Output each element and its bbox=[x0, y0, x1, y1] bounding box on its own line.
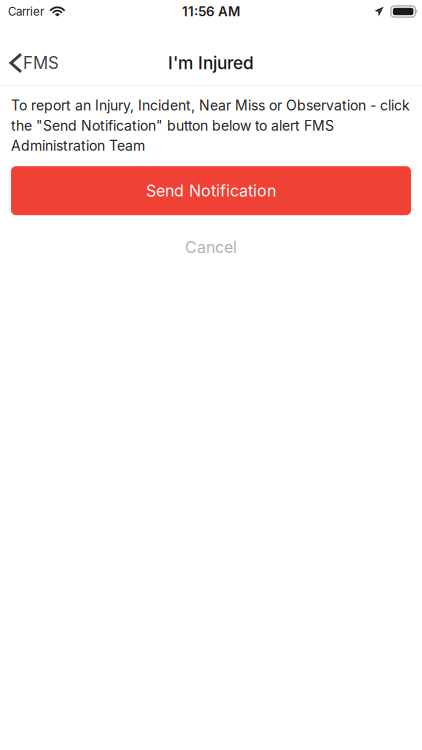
button[interactable]: Send Notification bbox=[11, 166, 411, 215]
staticText: FMS bbox=[23, 53, 59, 73]
button[interactable]: Cancel bbox=[11, 229, 411, 265]
button[interactable]: Back to FMS bbox=[0, 41, 69, 85]
staticText: Send Notification bbox=[146, 181, 276, 200]
staticText: 11:56 AM bbox=[182, 3, 240, 19]
staticText: To report an Injury, Incident, Near Miss… bbox=[11, 97, 410, 154]
staticText: Cancel bbox=[185, 237, 237, 257]
staticText: I'm Injured bbox=[168, 53, 254, 73]
staticText: Carrier bbox=[8, 5, 44, 18]
